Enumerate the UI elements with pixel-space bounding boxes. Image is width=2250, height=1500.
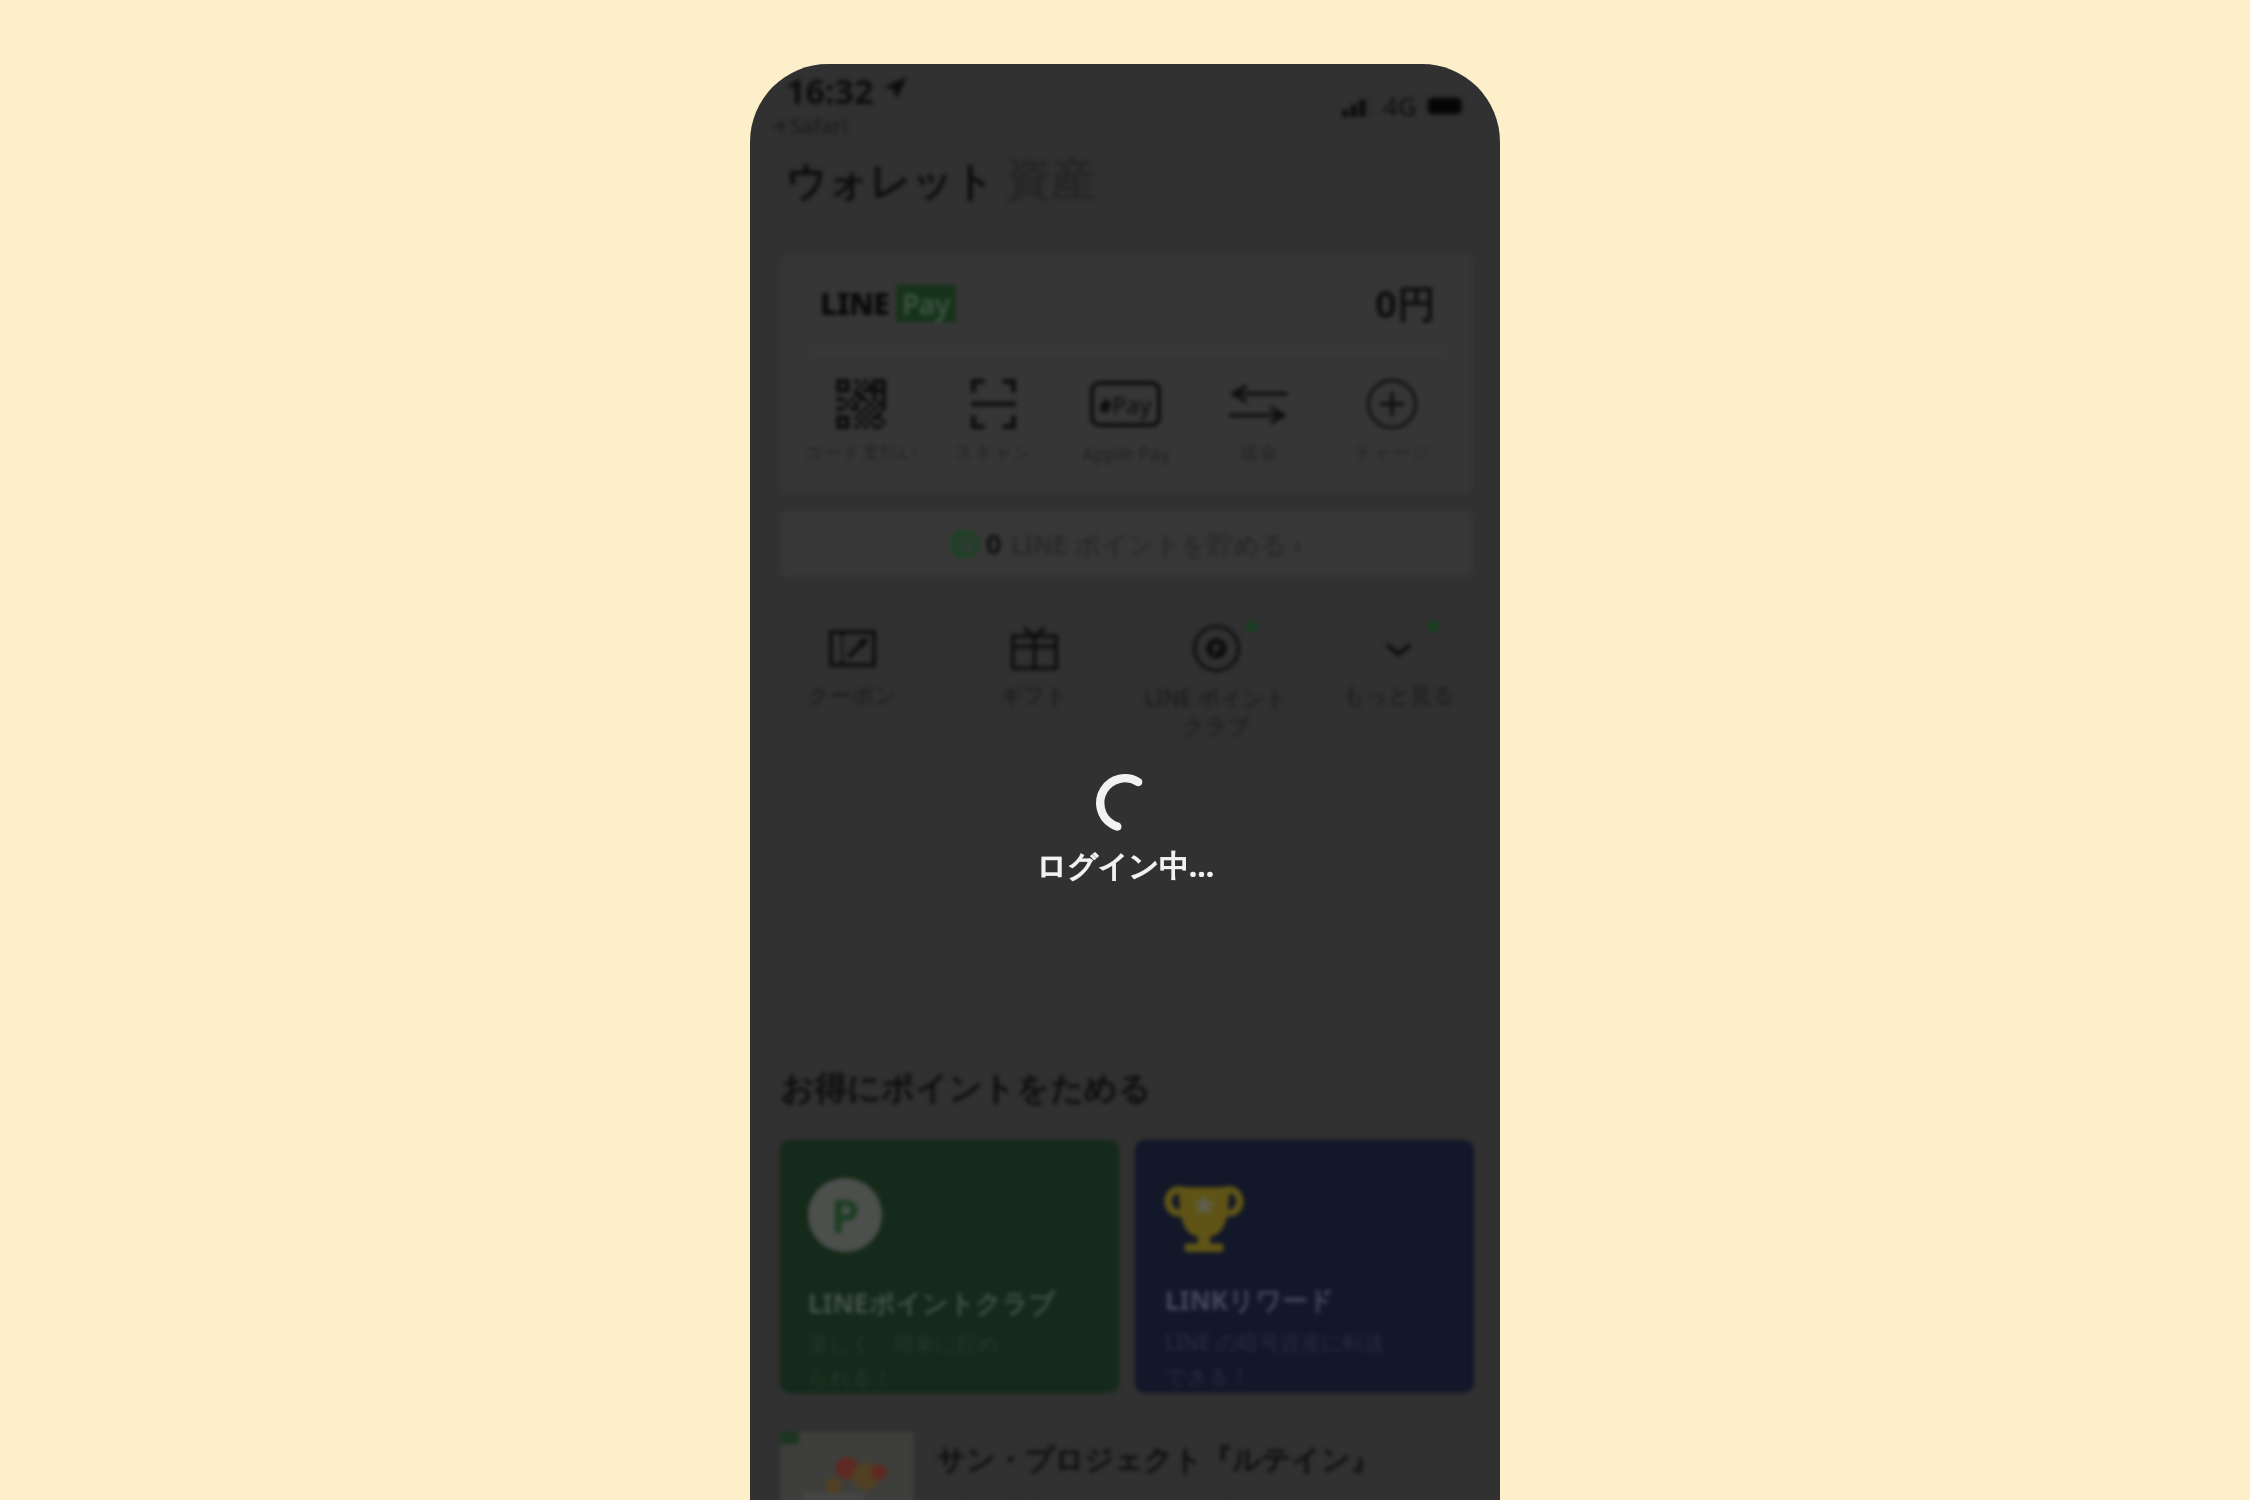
staticText: 4G <box>1383 88 1417 123</box>
button[interactable]: もっと見る <box>1307 624 1489 710</box>
button[interactable]: コード支払い <box>795 378 927 465</box>
staticText: 資産 <box>1006 153 1094 208</box>
button[interactable]: Safari <box>773 112 848 141</box>
staticText: P <box>959 532 971 557</box>
staticText: LINKリワード <box>1165 1282 1334 1318</box>
button[interactable]: ギフト <box>943 624 1125 710</box>
staticText: Pay <box>902 285 950 322</box>
staticText: もっと見る <box>1342 682 1455 710</box>
staticText: 16:32 <box>786 68 874 114</box>
staticText: 0円 <box>1375 277 1435 329</box>
button[interactable]: LINE <box>780 254 1473 494</box>
staticText: サン・プロジェクト『ルテイン』 <box>936 1442 1380 1479</box>
staticText: P <box>831 1184 860 1247</box>
staticText: P <box>1212 638 1222 658</box>
button[interactable]: サン・プロジェクト『ルテイン』 <box>780 1432 1474 1500</box>
button[interactable]: 送金 <box>1192 378 1325 465</box>
staticText: LINE の暗号資産に転送 できる！ <box>1165 1328 1386 1390</box>
staticText: LINEポイントクラブ <box>808 1285 1055 1321</box>
staticText: ログイン中... <box>1036 845 1215 886</box>
button[interactable]: Apple Pay <box>1059 378 1192 467</box>
button[interactable]: LINE ポイントクラブ <box>1125 624 1307 740</box>
staticText: 0 <box>986 525 1002 562</box>
staticText: LINE <box>820 283 889 324</box>
staticText: Pay <box>1112 389 1152 420</box>
button[interactable]: チャージ <box>1325 378 1458 465</box>
staticText: Safari <box>790 112 848 141</box>
staticText: お得にポイントをためる <box>780 1068 1151 1110</box>
staticText: ウォレット <box>785 157 995 209</box>
button[interactable]: LINKリワード <box>1135 1140 1474 1393</box>
button[interactable]: クーポン <box>761 624 943 710</box>
button[interactable]: P <box>780 1140 1119 1393</box>
button[interactable]: スキャン <box>927 378 1059 465</box>
